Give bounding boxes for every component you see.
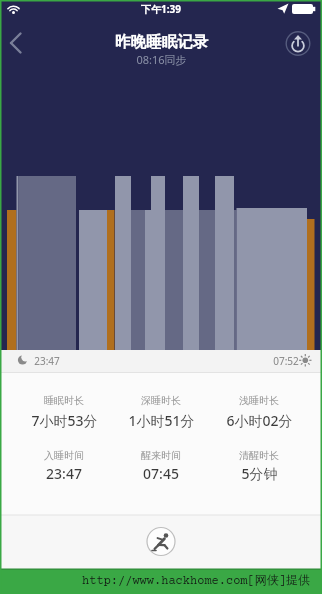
staticText: 07:52 (273, 354, 299, 368)
staticText: http://www.hackhome.com[网侠]提供 (82, 572, 310, 588)
staticText: 1小时51分 (128, 411, 195, 430)
staticText: 清醒时长 (239, 449, 279, 462)
staticText: 23:47 (34, 354, 60, 368)
staticText: 下午1:39 (141, 2, 181, 16)
staticText: 昨晚睡眠记录 (115, 32, 208, 52)
staticText: 07:45 (143, 464, 179, 483)
staticText: 深睡时长 (141, 394, 181, 407)
staticText: 23:47 (46, 464, 82, 483)
staticText: 6小时02分 (226, 411, 293, 430)
staticText: 醒来时间 (141, 449, 181, 462)
staticText: 睡眠时长 (44, 394, 84, 407)
staticText: 7小时53分 (31, 411, 98, 430)
staticText: 入睡时间 (44, 449, 84, 462)
staticText: 5分钟 (241, 464, 278, 483)
staticText: 浅睡时长 (239, 394, 279, 407)
staticText: 08:16同步 (136, 52, 187, 67)
